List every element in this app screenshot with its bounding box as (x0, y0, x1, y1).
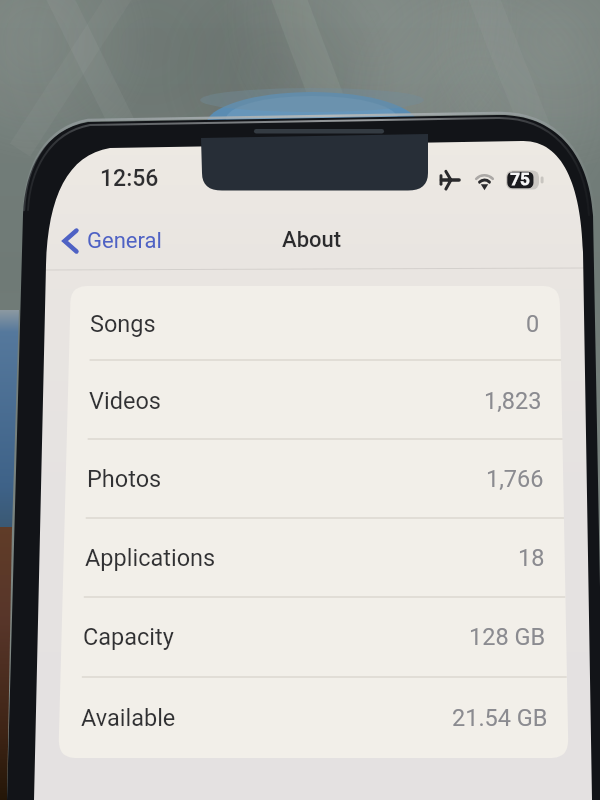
other: Airplane mode, Wi-Fi, battery 75 percent (432, 164, 552, 194)
staticText: 75 (507, 169, 533, 189)
staticText: 1,823 (484, 387, 542, 415)
staticText: About (282, 227, 342, 253)
staticText: 21.54 GB (452, 704, 548, 732)
staticText: Videos (89, 387, 161, 415)
staticText: Available (81, 704, 176, 732)
button[interactable]: Videos (68, 363, 562, 440)
staticText: 128 GB (469, 623, 546, 651)
button[interactable]: Available (60, 680, 568, 757)
button[interactable]: Applications (64, 520, 565, 597)
button[interactable]: Songs (69, 286, 560, 363)
button[interactable]: General (61, 221, 162, 261)
staticText: Applications (85, 544, 216, 572)
staticText: 0 (526, 310, 540, 338)
staticText: 12:56 (100, 165, 159, 192)
staticText: Songs (90, 310, 156, 338)
staticText: Capacity (83, 623, 174, 651)
staticText: 18 (518, 544, 545, 572)
button[interactable]: Capacity (62, 599, 566, 676)
staticText: 1,766 (486, 465, 544, 493)
staticText: General (87, 228, 162, 254)
staticText: Photos (87, 465, 162, 493)
button[interactable]: Photos (66, 441, 564, 518)
